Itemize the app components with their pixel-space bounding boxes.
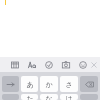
- button[interactable]: か: [40, 76, 58, 92]
- button[interactable]: Clipboard: [9, 59, 20, 70]
- button[interactable]: Text formatting: [26, 59, 37, 70]
- button[interactable]: た: [21, 94, 38, 100]
- button[interactable]: さ: [60, 76, 78, 92]
- button[interactable]: な: [40, 94, 58, 100]
- staticText: は: [65, 94, 73, 100]
- button[interactable]: Backspace: [80, 76, 98, 92]
- button[interactable]: は: [60, 94, 78, 100]
- button[interactable]: Camera: [60, 59, 71, 70]
- staticText: な: [45, 94, 53, 100]
- staticText: た: [26, 94, 34, 100]
- button[interactable]: Stickers: [77, 59, 88, 70]
- button[interactable]: Space: [80, 94, 98, 100]
- button[interactable]: Spell check: [43, 59, 54, 70]
- button[interactable]: Symbols: [2, 94, 19, 100]
- staticText: あ: [26, 80, 34, 89]
- button[interactable]: Close: [88, 59, 99, 70]
- staticText: さ: [65, 80, 73, 89]
- staticText: か: [45, 80, 53, 89]
- button[interactable]: あ: [21, 76, 38, 92]
- button[interactable]: Arrow: [2, 76, 19, 92]
